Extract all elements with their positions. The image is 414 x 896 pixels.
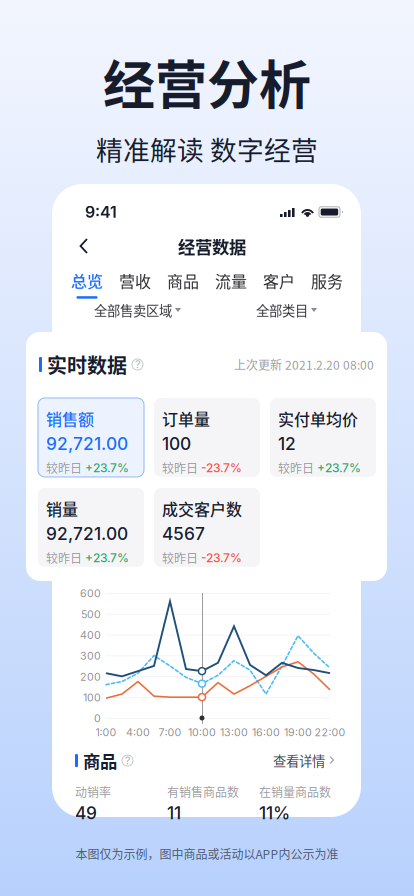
staticText: 商品: [167, 269, 199, 292]
staticText: ?: [135, 358, 140, 371]
staticText: 22:00: [314, 726, 345, 739]
staticText: 较昨日: [46, 549, 82, 566]
staticText: 全部售卖区域: [94, 300, 172, 320]
button[interactable]: 查看详情: [273, 751, 335, 770]
button[interactable]: 客户: [255, 265, 303, 295]
staticText: 在销量商品数: [259, 783, 331, 800]
staticText: 7:00: [158, 726, 181, 739]
staticText: 9:41: [85, 202, 117, 222]
staticText: 400: [80, 629, 101, 642]
staticText: 全部类目: [256, 300, 308, 320]
staticText: -23.7%: [201, 550, 242, 565]
staticText: 较昨日: [46, 459, 82, 476]
staticText: 4:00: [126, 726, 150, 739]
staticText: -23.7%: [201, 460, 242, 475]
button[interactable]: 营收: [111, 265, 159, 295]
staticText: 较昨日: [162, 459, 198, 476]
staticText: 92,721.00: [46, 433, 128, 454]
staticText: 动销率: [75, 783, 111, 800]
staticText: 实时数据: [47, 350, 127, 379]
staticText: 流量: [215, 269, 247, 292]
staticText: 16:00: [252, 726, 280, 739]
staticText: 100: [162, 433, 191, 454]
staticText: 0: [94, 712, 101, 725]
staticText: ?: [125, 754, 130, 767]
staticText: 销量: [46, 497, 78, 520]
staticText: 实付单均价: [278, 407, 358, 430]
staticText: 100: [83, 691, 101, 704]
button[interactable]: 成交客户数: [154, 488, 260, 567]
staticText: 营收: [119, 269, 151, 292]
staticText: 300: [80, 649, 101, 662]
staticText: 12: [278, 433, 296, 454]
staticText: 13:00: [220, 726, 248, 739]
staticText: 商品: [83, 748, 117, 773]
staticText: 订单量: [162, 407, 210, 430]
button[interactable]: 总览: [63, 265, 111, 295]
staticText: 成交客户数: [162, 497, 242, 520]
staticText: 10:00: [188, 726, 216, 739]
staticText: 总览: [71, 269, 103, 292]
staticText: 较昨日: [162, 549, 198, 566]
staticText: +23.7%: [317, 460, 361, 475]
staticText: 销售额: [46, 407, 94, 430]
button[interactable]: 服务: [303, 265, 351, 295]
staticText: 92,721.00: [46, 523, 128, 544]
staticText: 经营数据: [178, 233, 246, 259]
button[interactable]: 流量: [207, 265, 255, 295]
staticText: 本图仅为示例，图中商品或活动以APP内公示为准: [75, 845, 338, 862]
button[interactable]: 全部售卖区域: [63, 300, 212, 320]
button[interactable]: 销售额: [38, 398, 144, 477]
staticText: 600: [80, 587, 101, 600]
staticText: 19:00: [284, 726, 312, 739]
staticText: 精准解读 数字经营: [96, 129, 318, 168]
staticText: 200: [80, 670, 101, 683]
staticText: 服务: [311, 269, 343, 292]
staticText: 11: [167, 802, 181, 823]
staticText: +23.7%: [85, 550, 129, 565]
staticText: 较昨日: [278, 459, 314, 476]
staticText: +23.7%: [85, 460, 129, 475]
button[interactable]: 全部类目: [212, 300, 361, 320]
button[interactable]: 销量: [38, 488, 144, 567]
staticText: 客户: [263, 269, 295, 292]
staticText: 有销售商品数: [167, 783, 239, 800]
button[interactable]: 商品: [159, 265, 207, 295]
staticText: 经营分析: [103, 44, 311, 119]
staticText: 查看详情: [273, 751, 325, 770]
staticText: 500: [81, 608, 101, 621]
staticText: 上次更新 2021.2.20 08:00: [234, 356, 374, 373]
staticText: 1:00: [95, 726, 116, 739]
staticText: 49: [75, 802, 97, 823]
button[interactable]: 订单量: [154, 398, 260, 477]
button[interactable]: Back: [79, 232, 107, 260]
staticText: 11%: [259, 802, 290, 823]
staticText: 4567: [162, 523, 205, 544]
button[interactable]: 实付单均价: [270, 398, 376, 477]
